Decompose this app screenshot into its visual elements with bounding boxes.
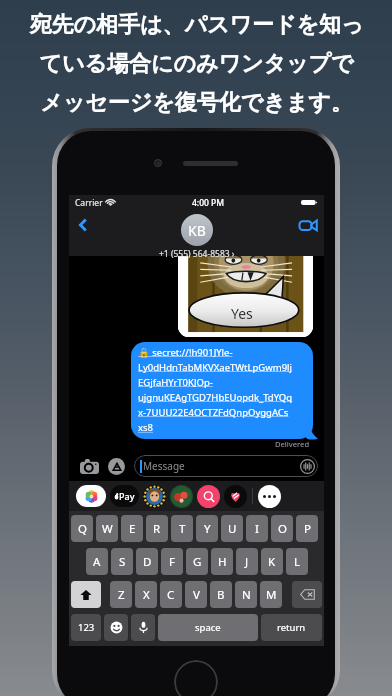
button[interactable]: Shift bbox=[71, 581, 101, 608]
staticText: 宛先の相手は、パスワードを知っ ている場合にのみワンタップで メッセージを復号化… bbox=[29, 11, 364, 117]
staticText: E bbox=[129, 521, 136, 537]
button[interactable]: Images bbox=[197, 485, 220, 508]
button[interactable]: D bbox=[136, 548, 158, 575]
staticText: Pay bbox=[119, 490, 135, 502]
button[interactable]: Back bbox=[70, 212, 96, 238]
staticText: O bbox=[278, 521, 287, 537]
button[interactable]: App Store bbox=[105, 455, 127, 477]
staticText: Yes bbox=[231, 304, 253, 323]
staticText: +1 (555) 564-8583 › bbox=[159, 248, 235, 260]
button[interactable]: B bbox=[210, 581, 232, 608]
staticText: M bbox=[266, 587, 277, 603]
button[interactable]: J bbox=[236, 548, 258, 575]
staticText: W bbox=[102, 521, 113, 537]
staticText: L bbox=[294, 554, 301, 570]
staticText: H bbox=[218, 554, 227, 570]
staticText: Y bbox=[204, 521, 211, 537]
staticText: N bbox=[242, 587, 251, 603]
button[interactable]: Emoji bbox=[104, 614, 128, 641]
staticText: G bbox=[193, 554, 202, 570]
button[interactable]: Message bbox=[134, 455, 318, 477]
staticText: KB bbox=[188, 221, 206, 240]
button[interactable]: I bbox=[246, 515, 268, 542]
button[interactable]: K bbox=[261, 548, 283, 575]
button[interactable]: E bbox=[121, 515, 143, 542]
staticText: return bbox=[277, 621, 306, 634]
button[interactable]: H bbox=[211, 548, 233, 575]
button[interactable]: Q bbox=[71, 515, 93, 542]
button[interactable]: C bbox=[160, 581, 182, 608]
button[interactable]: R bbox=[146, 515, 168, 542]
button[interactable]: W bbox=[96, 515, 118, 542]
staticText: 123 bbox=[78, 621, 95, 634]
staticText: Carrier bbox=[75, 197, 103, 209]
button[interactable]: P bbox=[296, 515, 318, 542]
staticText: C bbox=[167, 587, 175, 603]
button[interactable]: return bbox=[261, 614, 322, 641]
button[interactable]: G bbox=[186, 548, 208, 575]
staticText: J bbox=[245, 554, 249, 570]
staticText: S bbox=[119, 554, 126, 570]
button[interactable]: Delete bbox=[292, 581, 322, 608]
button[interactable]: M bbox=[260, 581, 282, 608]
button[interactable]: space bbox=[158, 614, 258, 641]
staticText: Message bbox=[143, 459, 185, 473]
button[interactable]: S bbox=[111, 548, 133, 575]
button[interactable]: X bbox=[135, 581, 157, 608]
staticText: I bbox=[255, 521, 259, 537]
button[interactable]: Stickers bbox=[170, 485, 193, 508]
button[interactable]: O bbox=[271, 515, 293, 542]
staticText: B bbox=[217, 587, 225, 603]
staticText: Q bbox=[78, 521, 87, 537]
button[interactable]: F bbox=[161, 548, 183, 575]
button[interactable]: Home bbox=[174, 660, 218, 696]
staticText: V bbox=[193, 587, 200, 603]
button[interactable]: Memoji bbox=[143, 485, 166, 508]
staticText: P bbox=[304, 521, 311, 537]
staticText: D bbox=[143, 554, 152, 570]
staticText: T bbox=[179, 521, 186, 537]
button[interactable]: More apps bbox=[258, 485, 281, 508]
staticText: U bbox=[228, 521, 237, 537]
button[interactable]: Digital Touch bbox=[224, 485, 247, 508]
button[interactable]: A bbox=[86, 548, 108, 575]
button[interactable]: Z bbox=[110, 581, 132, 608]
button[interactable]: V bbox=[185, 581, 207, 608]
staticText: X bbox=[143, 587, 150, 603]
button[interactable]: 🔒 secret://!h901JYle- Ly0dHdnTabMKVXaeTW… bbox=[131, 342, 313, 439]
staticText: space bbox=[195, 621, 221, 634]
staticText: 4:00 PM bbox=[192, 197, 225, 209]
button[interactable]: Camera bbox=[78, 455, 100, 477]
staticText: R bbox=[153, 521, 161, 537]
staticText: 🔒 secret://!h901JYle- Ly0dHdnTabMKVXaeTW… bbox=[138, 346, 293, 434]
button[interactable]: Apple Pay bbox=[110, 485, 139, 507]
button[interactable]: Photos bbox=[76, 485, 106, 507]
button[interactable]: KB bbox=[159, 214, 235, 260]
button[interactable]: 123 bbox=[71, 614, 101, 641]
button[interactable]: FaceTime video call bbox=[295, 212, 321, 238]
button[interactable]: L bbox=[286, 548, 308, 575]
staticText: F bbox=[169, 554, 175, 570]
staticText: Z bbox=[118, 587, 125, 603]
staticText: Delivered bbox=[275, 439, 310, 449]
button[interactable]: Dictation bbox=[131, 614, 155, 641]
staticText: K bbox=[268, 554, 276, 570]
button[interactable]: N bbox=[235, 581, 257, 608]
button[interactable]: U bbox=[221, 515, 243, 542]
button[interactable]: Y bbox=[196, 515, 218, 542]
staticText: A bbox=[93, 554, 101, 570]
button[interactable]: T bbox=[171, 515, 193, 542]
